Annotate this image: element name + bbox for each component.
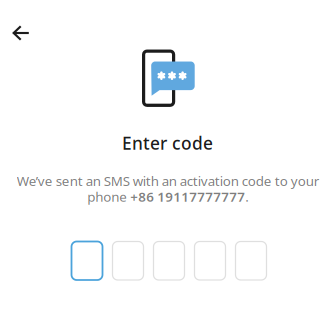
button[interactable]: Code digit 1 — [71, 241, 102, 280]
button[interactable]: Code digit 2 — [112, 241, 143, 280]
button[interactable]: Code digit 4 — [194, 241, 225, 280]
button[interactable]: Code digit 5 — [235, 241, 266, 280]
button[interactable]: Back — [0, 0, 43, 55]
button[interactable]: Code digit 3 — [153, 241, 184, 280]
staticText: Enter code — [122, 131, 213, 154]
staticText: We’ve sent an SMS with an activation cod… — [16, 172, 319, 205]
